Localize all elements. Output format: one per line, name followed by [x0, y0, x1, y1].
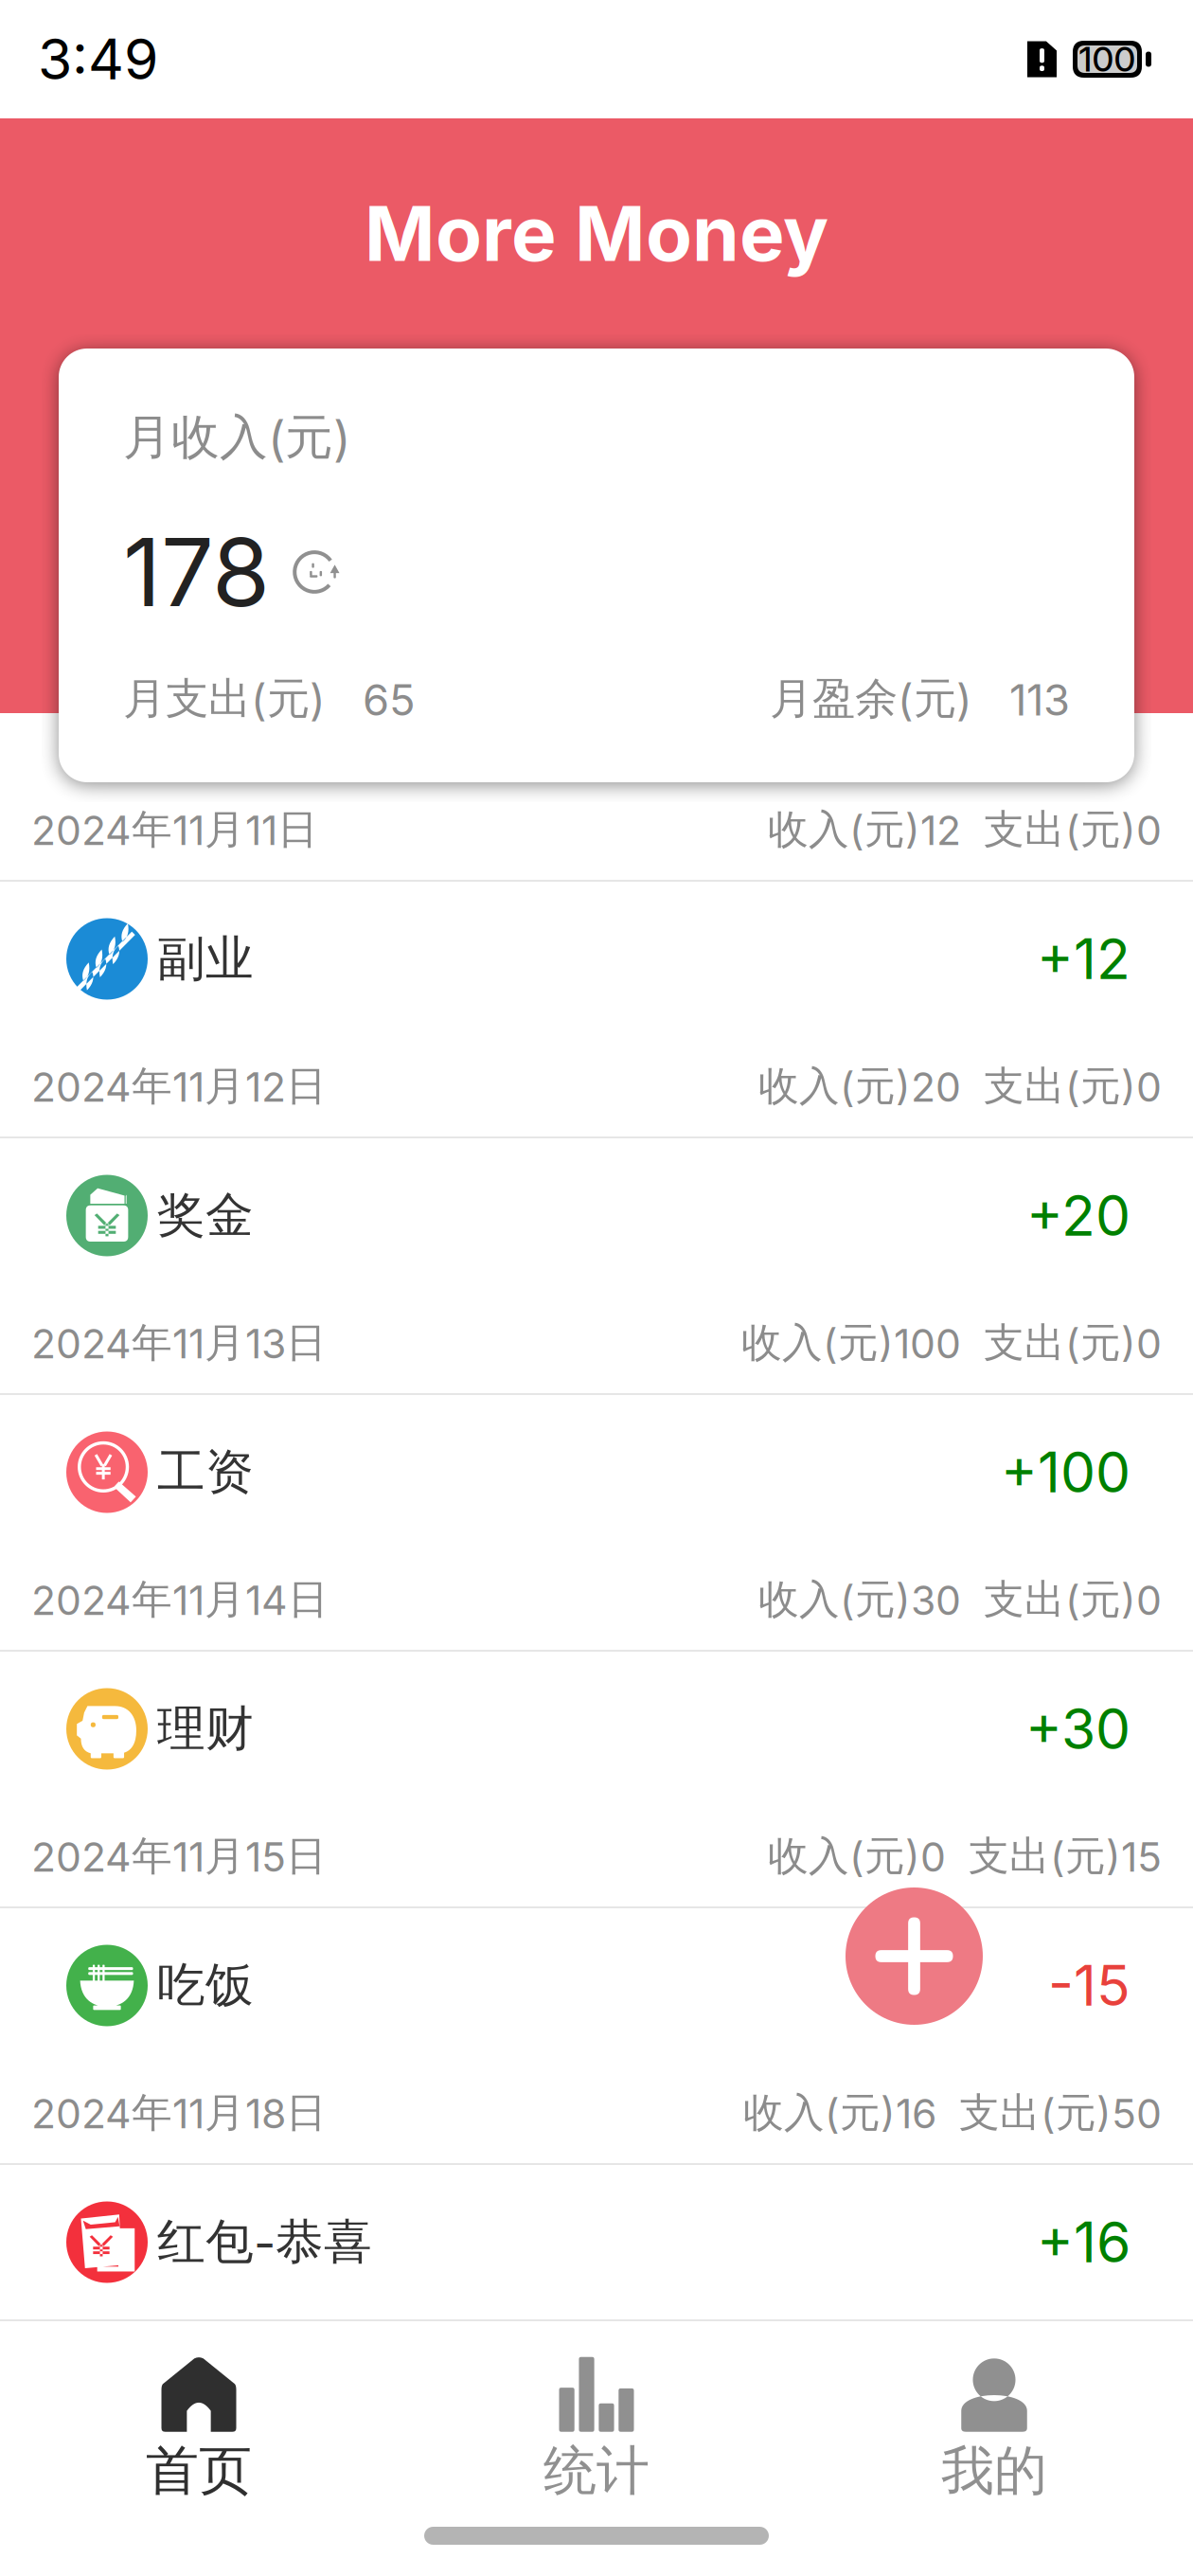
staticText: +12 — [1037, 925, 1131, 993]
staticText: 月盈余(元) 113 — [770, 672, 1070, 726]
staticText: 工资 — [157, 1442, 254, 1502]
button[interactable]: 奖金 — [0, 1138, 1193, 1293]
staticText: 首页 — [146, 2437, 252, 2504]
staticText: +16 — [1037, 2209, 1131, 2276]
staticText: 收入(元)30 支出(元)0 — [758, 1574, 1162, 1625]
staticText: 2024年11月11日 — [31, 804, 318, 855]
staticText: 2024年11月14日 — [31, 1574, 329, 1625]
staticText: 3:49 — [38, 26, 158, 93]
button[interactable]: 我的 — [795, 2310, 1193, 2504]
staticText: 收入(元)12 支出(元)0 — [768, 804, 1162, 855]
staticText: 收入(元)100 支出(元)0 — [741, 1317, 1162, 1368]
staticText: +20 — [1026, 1182, 1131, 1249]
staticText: 2024年11月15日 — [31, 1831, 327, 1882]
staticText: More Money — [365, 188, 828, 279]
staticText: 理财 — [157, 1699, 254, 1759]
staticText: 月支出(元) 65 — [123, 672, 416, 726]
button[interactable]: 吃饭 — [0, 1908, 1193, 2063]
button[interactable]: Add record — [846, 1887, 983, 2025]
staticText: 2024年11月12日 — [31, 1061, 327, 1112]
button[interactable]: 理财 — [0, 1652, 1193, 1806]
staticText: 收入(元)0 支出(元)15 — [768, 1831, 1162, 1882]
staticText: +100 — [1001, 1439, 1131, 1506]
staticText: 100 — [1079, 39, 1136, 80]
staticText: 统计 — [543, 2437, 650, 2504]
staticText: 2024年11月18日 — [31, 2087, 327, 2138]
staticText: 2024年11月13日 — [31, 1317, 327, 1368]
staticText: 月收入(元) — [123, 407, 350, 468]
button[interactable]: 工资 — [0, 1395, 1193, 1549]
staticText: 奖金 — [157, 1185, 254, 1246]
button[interactable]: 红包-恭喜 — [0, 2165, 1193, 2319]
button[interactable]: 首页 — [0, 2310, 398, 2504]
staticText: 178 — [123, 515, 270, 629]
staticText: 吃饭 — [157, 1955, 254, 2016]
staticText: +30 — [1025, 1695, 1131, 1762]
staticText: 我的 — [941, 2437, 1047, 2504]
staticText: 收入(元)20 支出(元)0 — [758, 1061, 1162, 1112]
button[interactable]: 统计 — [398, 2310, 795, 2504]
staticText: 副业 — [157, 929, 254, 989]
staticText: 收入(元)16 支出(元)50 — [743, 2087, 1162, 2138]
staticText: 红包-恭喜 — [157, 2212, 372, 2272]
button[interactable]: 副业 — [0, 882, 1193, 1036]
staticText: -15 — [1048, 1952, 1131, 2019]
